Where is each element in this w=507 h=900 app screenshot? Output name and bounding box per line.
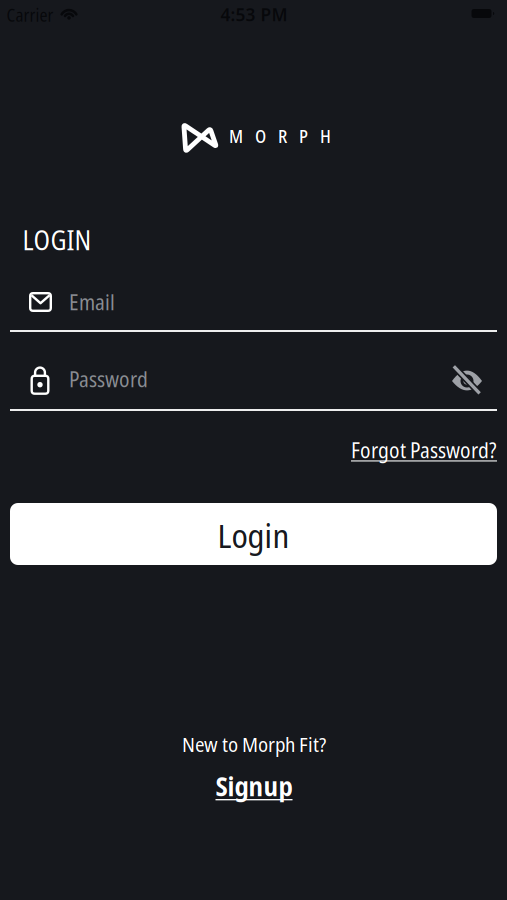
button[interactable]: Forgot Password? [351,435,497,465]
staticText: MORPH [229,124,331,148]
staticText: LOGIN [22,222,91,258]
staticText: Email [69,287,115,317]
button[interactable]: Login [10,503,497,565]
staticText: Carrier [6,3,53,27]
button[interactable]: Show password [444,358,489,403]
staticText: New to Morph Fit? [182,730,326,758]
staticText: Password [69,364,148,394]
button[interactable]: Email [10,292,497,332]
button[interactable]: Signup [215,768,292,804]
staticText: Forgot Password? [351,435,497,465]
button[interactable]: Password [10,365,497,412]
staticText: Login [217,512,289,558]
staticText: Signup [215,768,292,804]
staticText: 4:53 PM [220,3,287,26]
